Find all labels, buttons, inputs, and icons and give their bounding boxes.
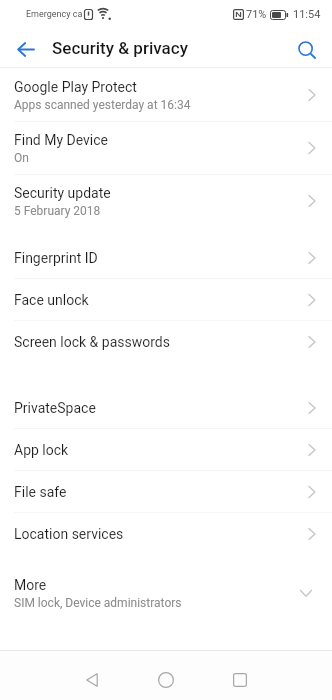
button[interactable]: Screen lock & passwords [0, 321, 332, 362]
button[interactable] [203, 660, 277, 700]
button[interactable]: Security update [0, 175, 332, 227]
staticText: Fingerprint ID [14, 250, 98, 266]
staticText: 11:54 [293, 8, 321, 21]
button[interactable]: Face unlock [0, 279, 332, 320]
staticText: Google Play Protect [14, 79, 137, 95]
button[interactable]: More [0, 567, 332, 619]
button[interactable]: Fingerprint ID [0, 237, 332, 278]
button[interactable]: PrivateSpace [0, 387, 332, 428]
staticText: Find My Device [14, 132, 109, 148]
button[interactable] [291, 34, 323, 66]
button[interactable]: Find My Device [0, 122, 332, 174]
staticText: File safe [14, 484, 67, 500]
staticText: 5 February 2018 [14, 204, 101, 218]
staticText: Security & privacy [52, 38, 188, 58]
button[interactable] [8, 32, 44, 67]
button[interactable] [55, 660, 129, 700]
staticText: Location services [14, 526, 124, 542]
button[interactable]: Google Play Protect [0, 69, 332, 121]
staticText: Apps scanned yesterday at 16:34 [14, 98, 191, 112]
staticText: Face unlock [14, 292, 89, 308]
button[interactable]: App lock [0, 429, 332, 470]
staticText: On [14, 151, 29, 165]
staticText: PrivateSpace [14, 400, 96, 416]
button[interactable]: Location services [0, 513, 332, 554]
staticText: SIM lock, Device administrators [14, 596, 182, 610]
staticText: Emergency ca [26, 9, 83, 20]
staticText: More [14, 577, 47, 593]
staticText: App lock [14, 442, 69, 458]
staticText: Screen lock & passwords [14, 334, 170, 350]
button[interactable]: File safe [0, 471, 332, 512]
staticText: 71% [246, 8, 267, 21]
button[interactable] [129, 660, 203, 700]
staticText: Security update [14, 185, 111, 201]
